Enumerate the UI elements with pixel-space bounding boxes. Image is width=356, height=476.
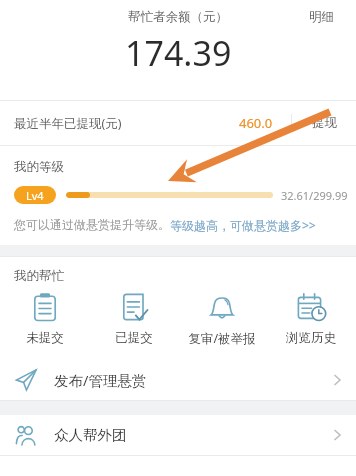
staticText: 460.0 (239, 114, 273, 132)
staticText: 我的帮忙 (14, 268, 64, 284)
staticText: 我的等级 (14, 159, 64, 175)
staticText: 32.61/299.99 (281, 188, 348, 203)
button[interactable]: 浏览历史 (268, 292, 354, 346)
other: 已提交 (119, 292, 149, 322)
button[interactable]: 未提交 (2, 292, 88, 346)
other: 众人帮外团 (14, 423, 38, 447)
staticText: 提现 (312, 115, 337, 131)
other: 浏览历史 (296, 292, 326, 322)
staticText: 未提交 (26, 330, 64, 346)
button[interactable]: 复审/被举报 (179, 292, 265, 347)
staticText: 浏览历史 (286, 330, 336, 346)
button[interactable]: 已提交 (91, 292, 177, 346)
other: 未提交 (30, 292, 60, 322)
staticText: 复审/被举报 (188, 330, 256, 347)
staticText: 众人帮外团 (54, 426, 127, 444)
staticText: 明细 (309, 9, 334, 25)
staticText: 帮忙者余额（元） (128, 9, 228, 25)
button[interactable]: 等级越高，可做悬赏越多>> (170, 217, 316, 233)
button[interactable]: 提现 (292, 101, 356, 145)
staticText: 发布/管理悬赏 (54, 370, 147, 390)
staticText: 已提交 (115, 330, 153, 346)
button[interactable]: 众人帮外团 (0, 415, 356, 455)
staticText: 最近半年已提现(元) (14, 115, 122, 132)
button[interactable]: 发布/管理悬赏 (0, 360, 356, 400)
staticText: 您可以通过做悬赏提升等级。 (14, 217, 170, 232)
button[interactable]: 明细 (286, 0, 356, 34)
other: 发布/管理悬赏 (14, 368, 38, 392)
other: 复审/被举报 (207, 292, 237, 322)
staticText: Lv4 (26, 188, 44, 203)
staticText: 174.39 (125, 30, 232, 76)
